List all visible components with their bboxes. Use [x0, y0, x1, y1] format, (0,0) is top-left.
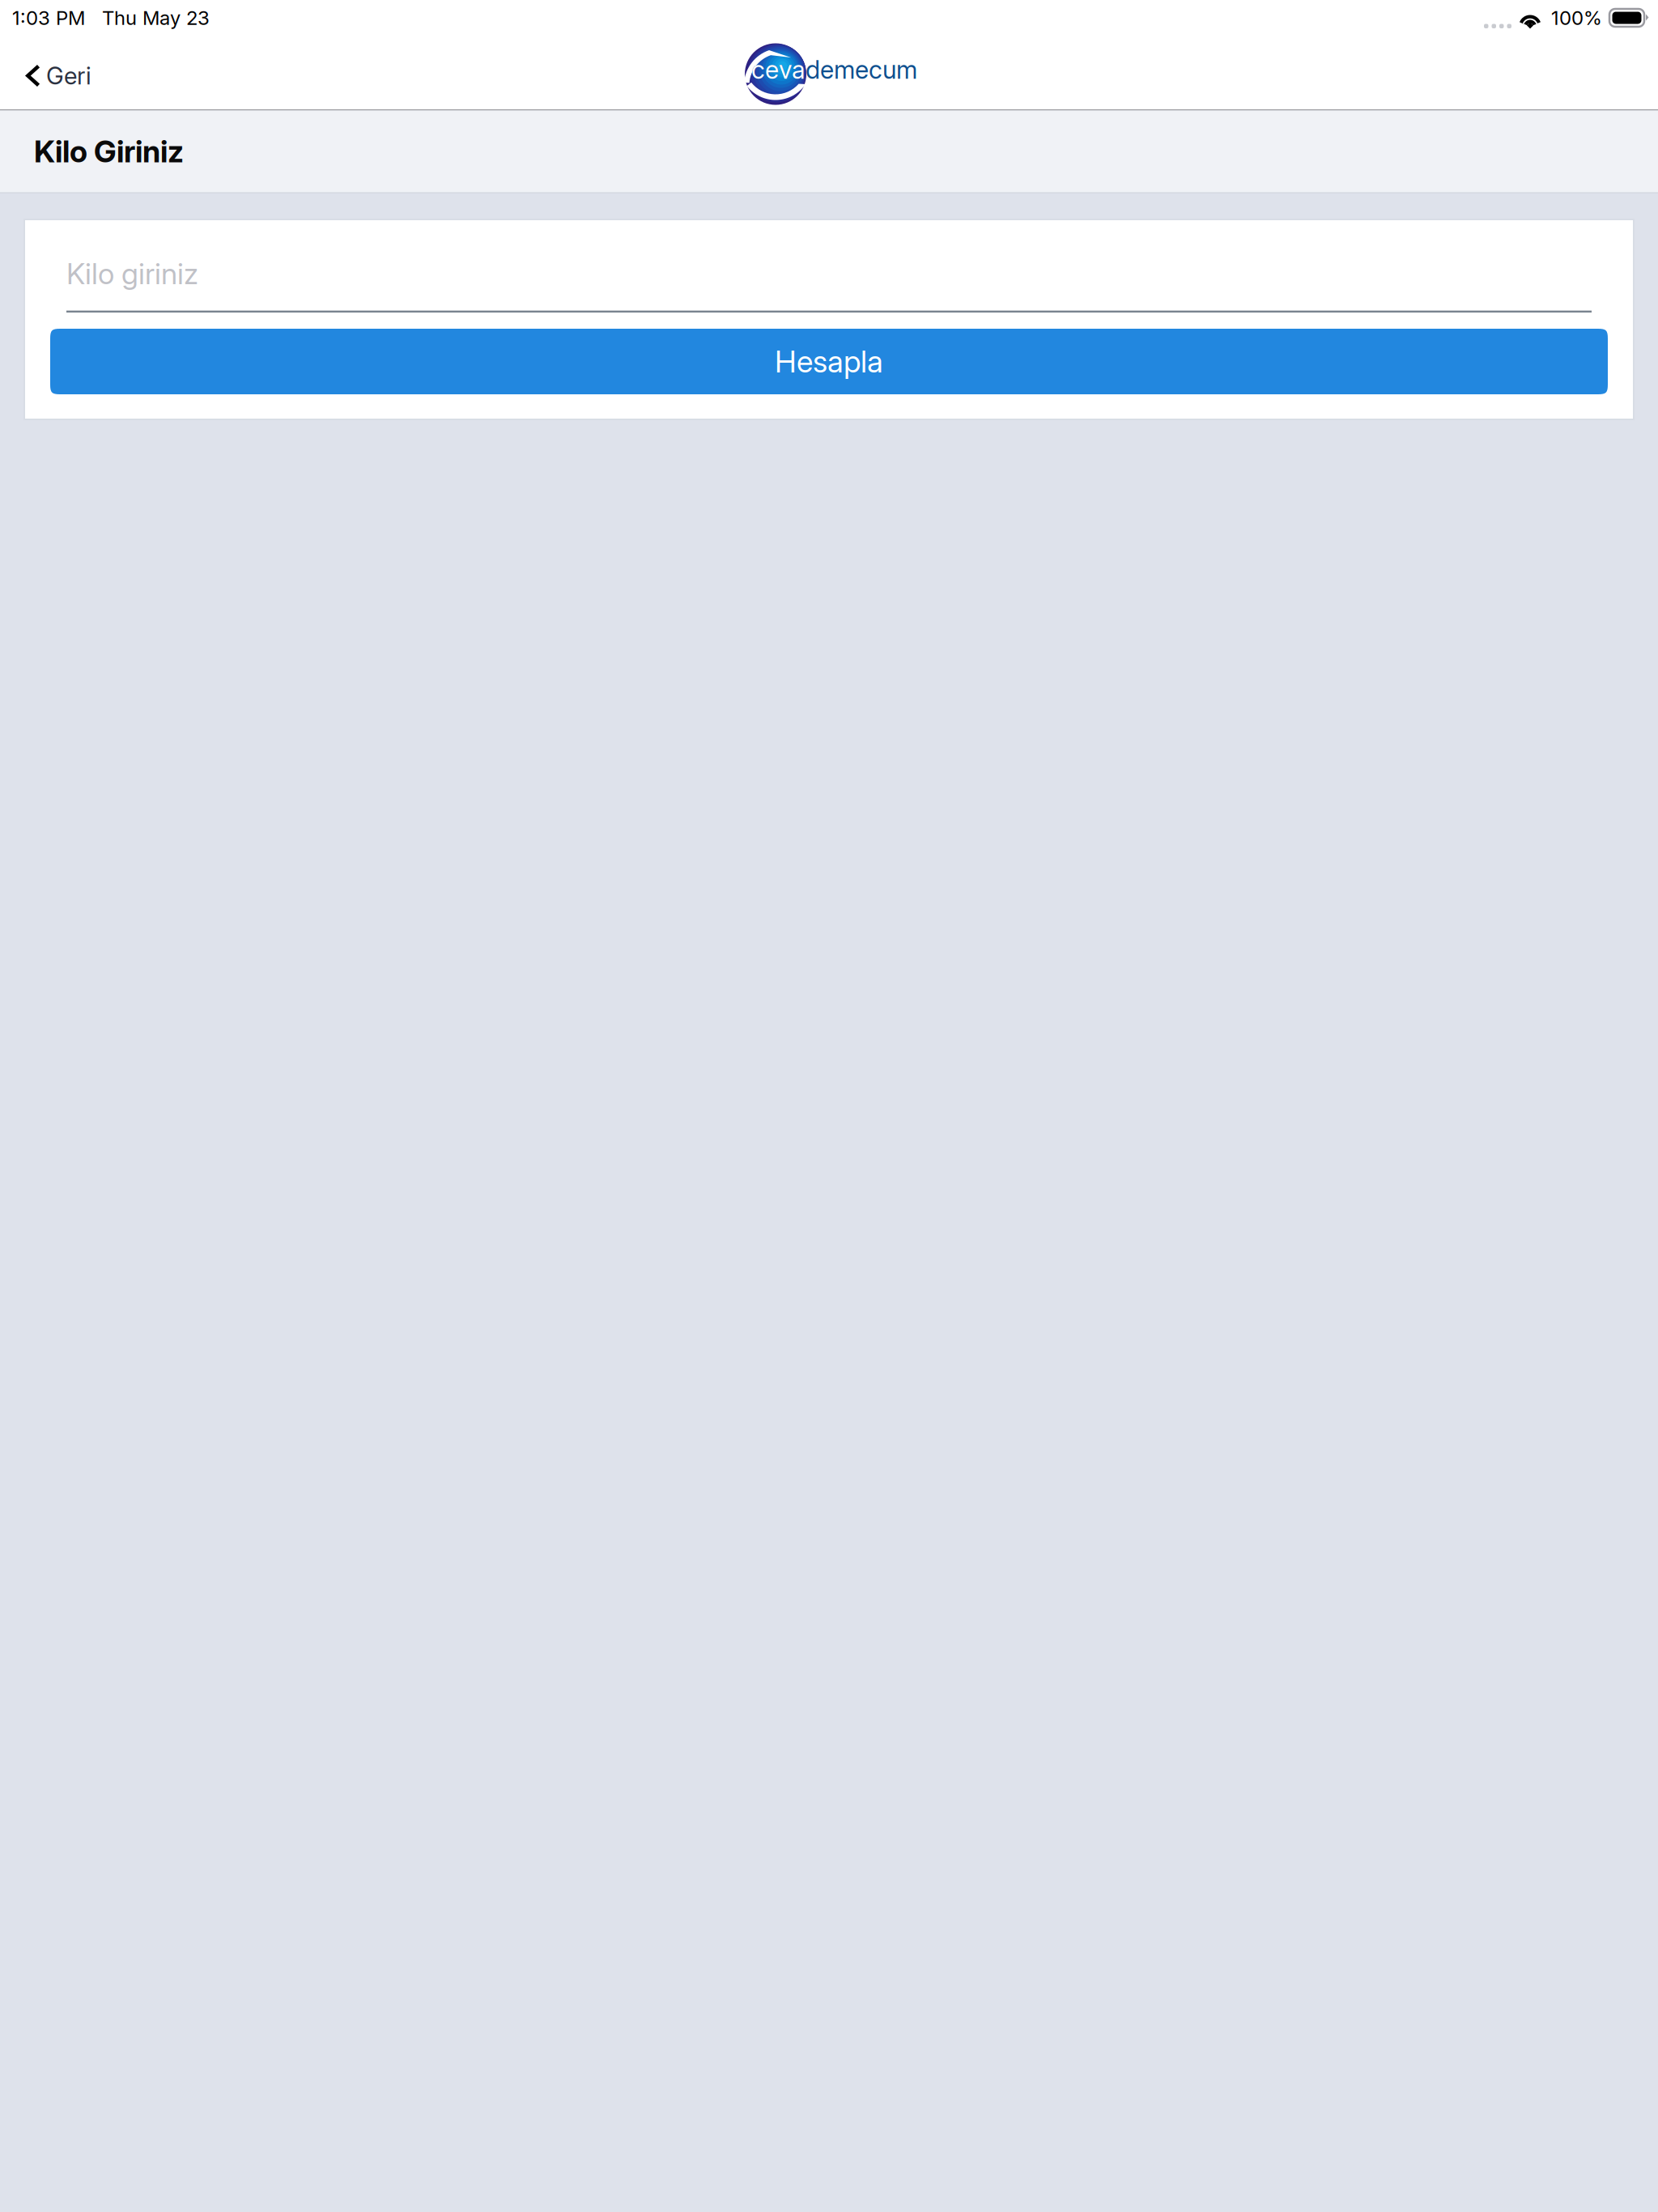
staticText: 100%: [1551, 6, 1602, 30]
staticText: ceva: [751, 55, 806, 85]
button[interactable]: Kilo giriniz: [66, 256, 1592, 313]
staticText: Kilo giriniz: [66, 256, 198, 291]
staticText: Geri: [46, 61, 91, 90]
button[interactable]: cevademecum: [743, 38, 915, 106]
staticText: Kilo Giriniz: [34, 133, 184, 170]
staticText: Hesapla: [775, 343, 883, 380]
staticText: Thu May 23: [102, 6, 210, 30]
button[interactable]: Geri: [0, 36, 106, 109]
staticText: 1:03 PM: [12, 6, 85, 30]
button[interactable]: Hesapla: [50, 329, 1608, 394]
staticText: cevademecum: [751, 55, 917, 85]
